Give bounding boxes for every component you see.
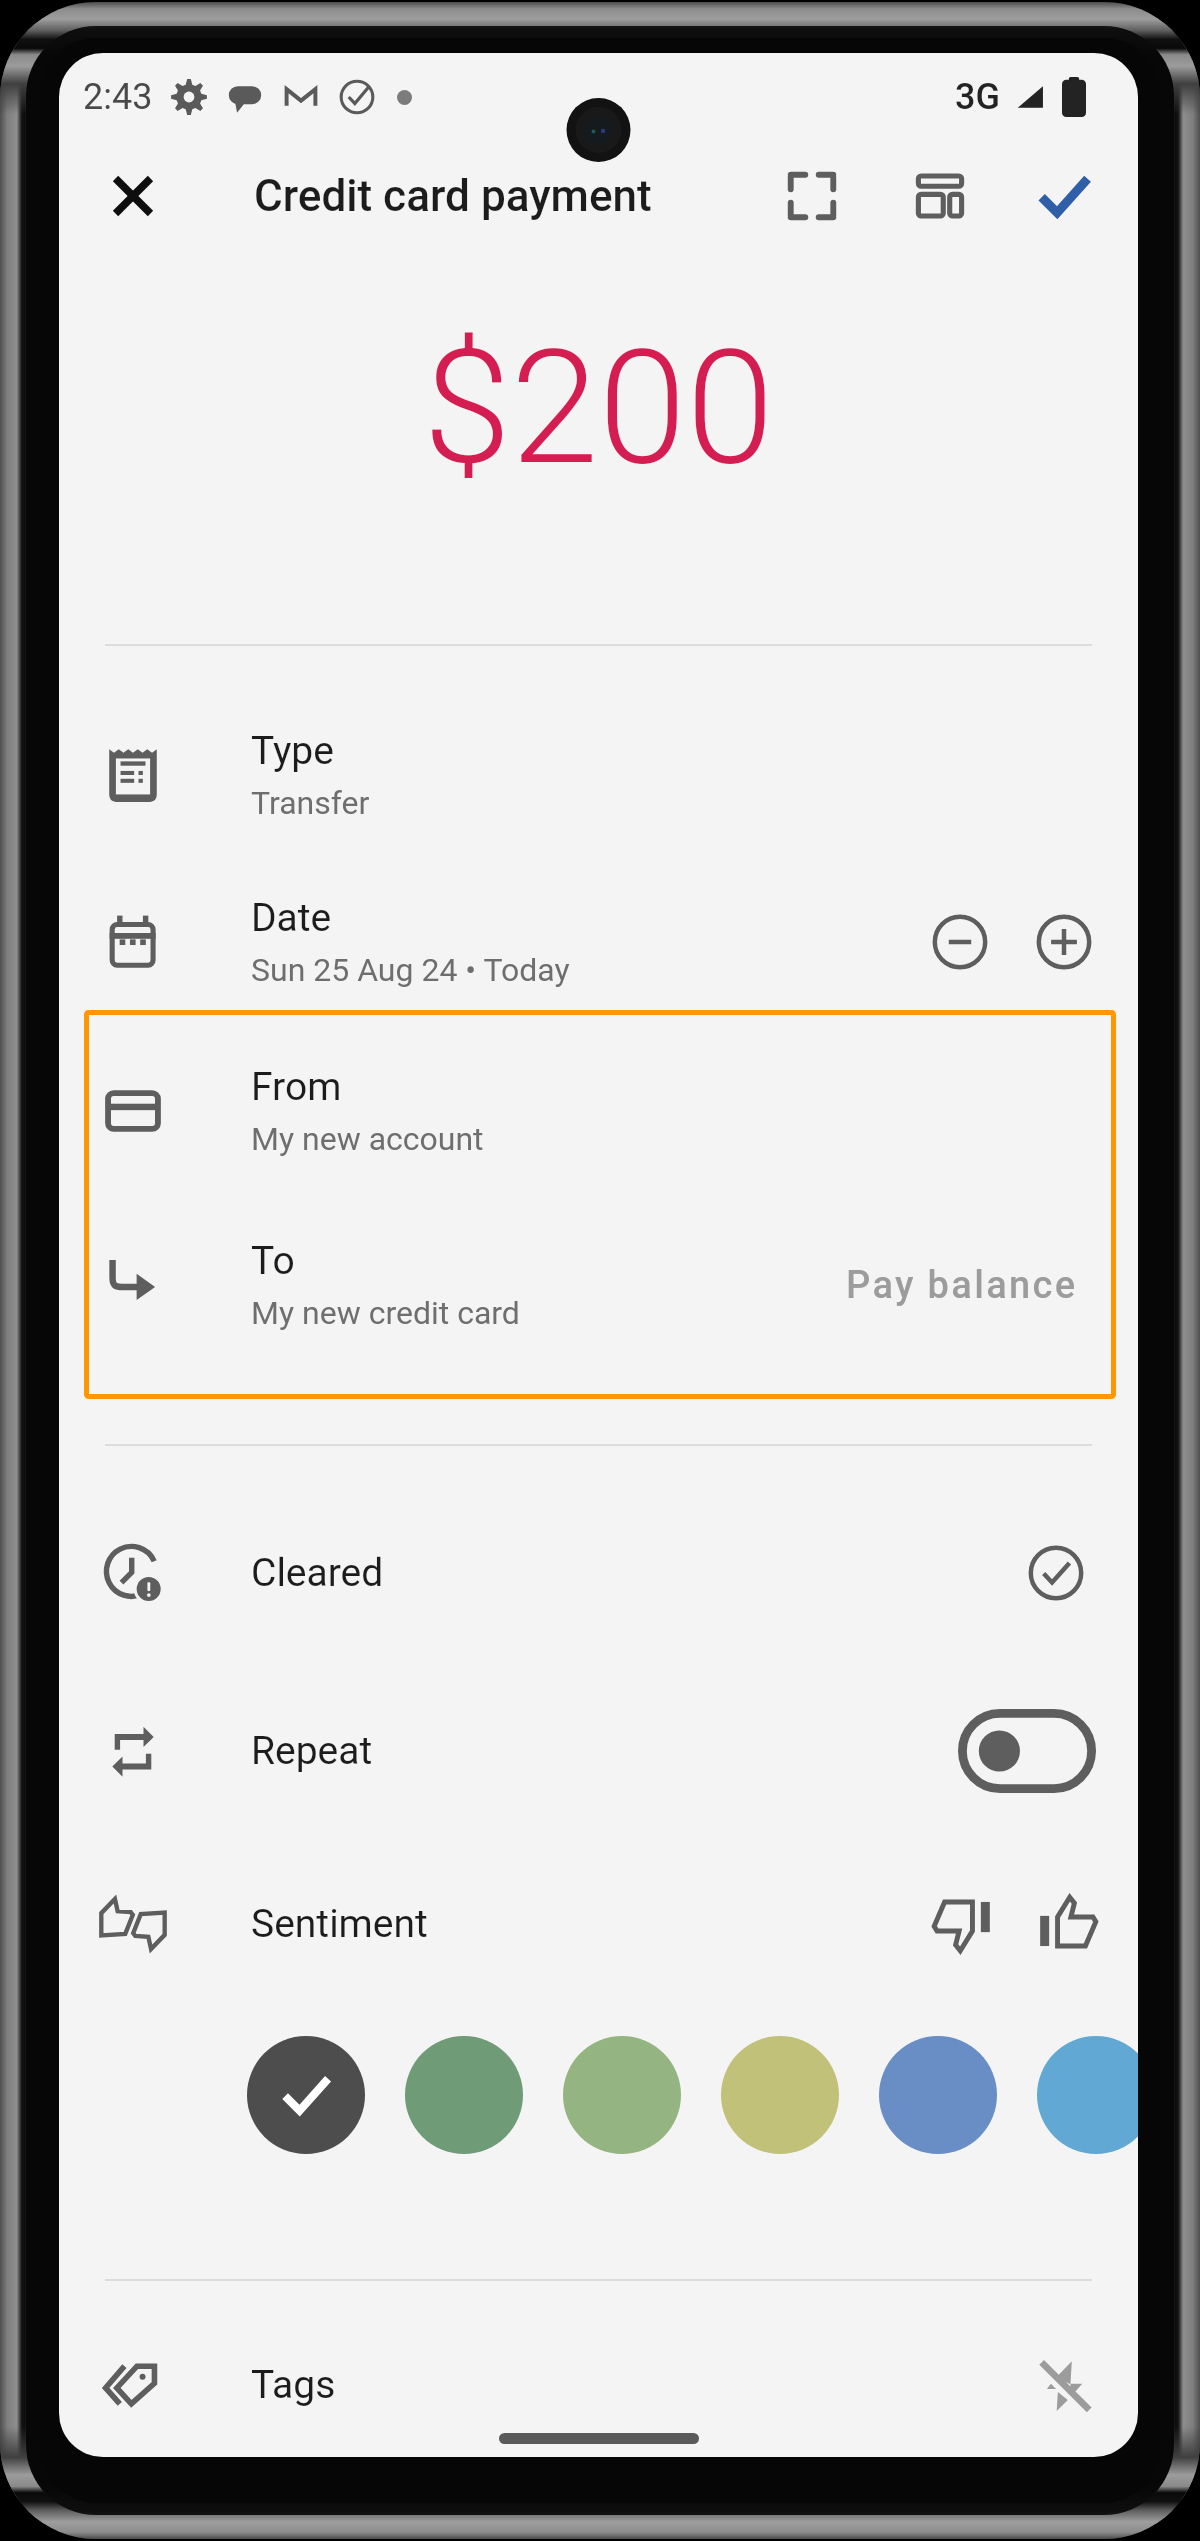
staticText: Sun 25 Aug 24 • Today (251, 951, 570, 989)
button[interactable]: Fullscreen (760, 144, 864, 248)
button[interactable]: From (59, 1036, 1138, 1186)
staticText: Transfer (251, 784, 370, 822)
staticText: My new credit card (251, 1294, 520, 1332)
button[interactable]: Colour option 6 (1037, 2036, 1138, 2154)
staticText: Pay balance (846, 1263, 1078, 1308)
button[interactable]: Thumbs down (916, 1878, 1008, 1970)
staticText: Date (251, 895, 332, 941)
button[interactable]: Amount (59, 315, 1138, 605)
button[interactable]: Sentiment (59, 1864, 1138, 1984)
staticText: Cleared (251, 1550, 384, 1596)
staticText: $200 (423, 315, 774, 500)
button[interactable]: Colour option 2 (405, 2036, 523, 2154)
button[interactable]: Colour option 4 (721, 2036, 839, 2154)
button[interactable]: Save (1012, 144, 1116, 248)
button[interactable]: Colour option 5 (879, 2036, 997, 2154)
button[interactable]: Pay balance (834, 1245, 1090, 1326)
button[interactable]: Colour option 1 (247, 2036, 365, 2154)
staticText: Repeat (251, 1728, 373, 1774)
button[interactable]: Cleared (1008, 1525, 1104, 1621)
button[interactable]: Thumbs up (1022, 1878, 1114, 1970)
button[interactable]: Cleared (59, 1513, 1138, 1633)
button[interactable]: Repeat (59, 1691, 1138, 1811)
staticText: 3G (955, 76, 1000, 118)
button[interactable]: Flash off (1020, 2339, 1112, 2431)
button[interactable]: Layout (888, 144, 992, 248)
staticText: My new account (251, 1120, 484, 1158)
button[interactable]: Previous day (912, 894, 1008, 990)
staticText: Tags (251, 2362, 336, 2408)
button[interactable]: Type (59, 700, 1138, 850)
staticText: Credit card payment (254, 170, 652, 222)
button[interactable]: To (59, 1210, 834, 1360)
button[interactable]: Date (59, 867, 912, 1017)
staticText: Type (251, 728, 334, 774)
staticText: Sentiment (251, 1901, 428, 1947)
button[interactable]: Close (73, 136, 193, 256)
staticText: To (251, 1238, 295, 1284)
button[interactable]: Next day (1016, 894, 1112, 990)
staticText: 2:43 (83, 76, 153, 118)
button[interactable]: Tags (59, 2325, 1138, 2445)
button[interactable]: Repeat toggle (948, 1699, 1106, 1803)
staticText: From (251, 1064, 342, 1110)
button[interactable]: Colour option 3 (563, 2036, 681, 2154)
